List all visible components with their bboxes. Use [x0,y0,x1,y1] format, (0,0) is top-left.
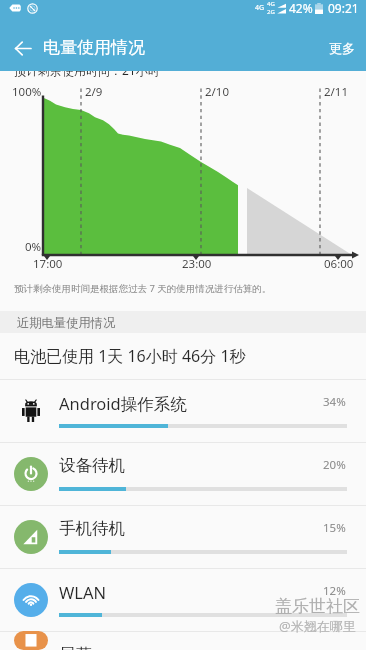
staticText: 09:21 [328,0,359,16]
staticText: Android操作系统 [59,392,187,415]
staticText: 盖乐世社区 [275,596,360,617]
button[interactable]: 手机待机 [0,505,366,568]
staticText: 4G [255,3,265,13]
staticText: 100% [12,84,42,100]
button[interactable]: 设备待机 [0,442,366,505]
button[interactable]: 屏幕 [0,631,366,650]
staticText: WLAN [59,581,107,603]
staticText: 电量使用情况 [43,37,145,58]
staticText: 手机待机 [59,518,125,539]
staticText: 电池已使用 1天 16小时 46分 1秒 [14,345,246,367]
staticText: 4G [267,0,275,8]
staticText: 15% [323,520,346,536]
button[interactable]: WLAN [0,568,366,631]
staticText: @米翘在哪里 [279,617,356,635]
staticText: 42% [289,0,313,16]
staticText: 设备待机 [59,455,125,476]
staticText: 23:00 [182,256,212,272]
staticText: 2/9 [85,84,103,100]
staticText: 2/10 [205,84,230,100]
staticText: 预计剩余使用时间是根据您过去 7 天的使用情况进行估算的。 [14,282,272,295]
staticText: 34% [323,394,346,410]
staticText: 0% [25,239,42,255]
button[interactable]: Back [7,32,39,64]
button[interactable]: 更多 [318,28,366,68]
staticText: 屏幕 [59,644,92,650]
staticText: 2/11 [324,84,349,100]
button[interactable]: Android操作系统 [0,379,366,442]
staticText: 06:00 [324,256,354,272]
staticText: 20% [323,457,346,473]
staticText: 更多 [329,40,355,56]
staticText: 预计剩余使用时间：21小时 [14,62,160,78]
staticText: 2G [267,8,275,16]
staticText: 17:00 [33,256,63,272]
staticText: 12% [323,583,346,599]
staticText: 近期电量使用情况 [17,315,116,330]
